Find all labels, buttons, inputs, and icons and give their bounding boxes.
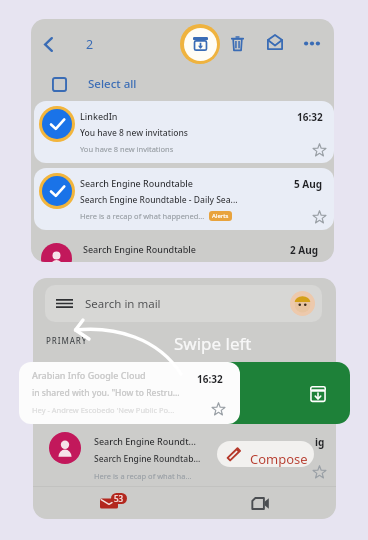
- staticText: 16:32: [297, 110, 323, 124]
- button[interactable]: Star: [311, 209, 328, 226]
- staticText: Search Engine Roundt...: [94, 435, 196, 447]
- staticText: Alerts: [212, 212, 229, 220]
- button[interactable]: Star: [311, 142, 328, 159]
- staticText: Search in mail: [85, 296, 161, 312]
- button[interactable]: Select all: [52, 69, 183, 99]
- button[interactable]: [41, 243, 72, 262]
- button[interactable]: Back: [34, 30, 62, 58]
- staticText: 16:32: [197, 372, 223, 386]
- staticText: PRIMARY: [46, 335, 88, 346]
- staticText: in shared with you. "How to Restru...: [32, 387, 180, 399]
- staticText: 2: [86, 36, 94, 53]
- button[interactable]: Account: [290, 291, 315, 316]
- button[interactable]: [49, 432, 81, 464]
- button[interactable]: Meet: [184, 487, 336, 519]
- button[interactable]: LinkedIn: [34, 101, 334, 163]
- staticText: Compose: [250, 450, 308, 467]
- button[interactable]: Star: [210, 401, 227, 418]
- button[interactable]: Arabian Info Google Cloud: [19, 362, 240, 424]
- button[interactable]: Compose: [217, 441, 314, 467]
- staticText: Arabian Info Google Cloud: [32, 369, 146, 381]
- button[interactable]: Open navigation menu: [56, 295, 73, 312]
- staticText: 53: [114, 493, 124, 504]
- staticText: 5 Aug: [294, 177, 323, 191]
- staticText: 2 Aug: [290, 243, 319, 257]
- staticText: Search Engine Roundtab...: [94, 453, 201, 465]
- staticText: Here is a recap of what ha...: [94, 471, 192, 481]
- staticText: Swipe left: [174, 332, 252, 355]
- staticText: Select all: [88, 76, 137, 92]
- staticText: Here is a recap of what happened...: [80, 211, 205, 221]
- button[interactable]: Open navigation menu: [45, 285, 322, 322]
- button[interactable]: Archive: [309, 385, 327, 403]
- staticText: Search Engine Roundtable: [83, 243, 196, 255]
- staticText: Search Engine Roundtable: [80, 177, 193, 189]
- button[interactable]: Star: [311, 464, 328, 481]
- staticText: You have 8 new invitations: [80, 127, 188, 139]
- button[interactable]: More options: [298, 29, 326, 57]
- button[interactable]: Archive: [185, 29, 215, 59]
- button[interactable]: Mark as unread: [261, 28, 289, 56]
- staticText: Search Engine Roundtable - Daily Sea...: [80, 194, 238, 206]
- staticText: You have 8 new invitations: [80, 144, 174, 154]
- button[interactable]: Mail: [33, 487, 184, 519]
- button[interactable]: Search Engine Roundtable: [34, 168, 334, 230]
- staticText: Hey - Andrew Escobedo 'New Public Po...: [32, 405, 175, 415]
- staticText: ig: [315, 435, 325, 449]
- staticText: LinkedIn: [80, 110, 118, 122]
- button[interactable]: Delete: [223, 29, 251, 57]
